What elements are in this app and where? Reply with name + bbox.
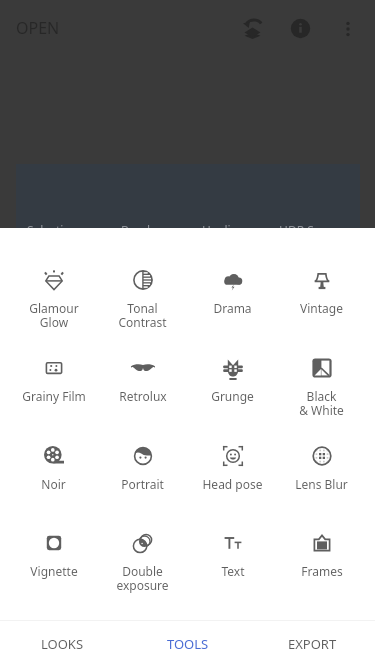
button[interactable]: EXPORT [250, 621, 375, 667]
staticText: LOOKS [41, 635, 84, 653]
staticText: TOOLS [167, 635, 209, 653]
button[interactable]: Vintage [277, 242, 366, 330]
staticText: Frames [301, 563, 343, 579]
button[interactable]: Tonal Contrast [98, 242, 187, 330]
staticText: Grunge [211, 388, 254, 404]
staticText: Black & White [299, 388, 344, 418]
button[interactable]: Image details [276, 4, 325, 53]
button[interactable]: Drama [188, 242, 277, 330]
button[interactable]: TOOLS [125, 621, 250, 667]
staticText: Grainy Film [22, 388, 86, 404]
button[interactable]: Noir [9, 418, 98, 506]
staticText: Text [221, 563, 245, 579]
staticText: Healing [202, 222, 246, 238]
staticText: Brush [121, 222, 155, 238]
button[interactable]: Grunge [188, 330, 277, 418]
button[interactable]: Retrolux [98, 330, 187, 418]
button[interactable]: Double exposure [98, 505, 187, 593]
staticText: Noir [41, 476, 66, 492]
button[interactable]: LOOKS [0, 621, 125, 667]
staticText: Vignette [30, 563, 78, 579]
staticText: Double exposure [116, 563, 169, 593]
staticText: Vintage [300, 300, 343, 316]
staticText: Retrolux [119, 388, 167, 404]
button[interactable]: Text [188, 505, 277, 593]
staticText: HDR Scape [279, 222, 341, 238]
button[interactable]: Vignette [9, 505, 98, 593]
button[interactable]: Lens Blur [277, 418, 366, 506]
button[interactable]: Grainy Film [9, 330, 98, 418]
button[interactable]: Glamour Glow [9, 242, 98, 330]
button[interactable]: Revert edits [228, 5, 276, 53]
staticText: Tonal Contrast [118, 300, 167, 330]
button[interactable]: Portrait [98, 418, 187, 506]
staticText: Drama [213, 300, 252, 316]
button[interactable]: OPEN [0, 3, 76, 53]
button[interactable]: Frames [277, 505, 366, 593]
staticText: Portrait [121, 476, 164, 492]
staticText: Head pose [202, 476, 263, 492]
staticText: Lens Blur [295, 476, 348, 492]
button[interactable]: Head pose [188, 418, 277, 506]
staticText: Glamour Glow [29, 300, 79, 330]
staticText: Selective [27, 222, 77, 238]
staticText: EXPORT [288, 635, 337, 653]
button[interactable]: Black & White [277, 330, 366, 418]
